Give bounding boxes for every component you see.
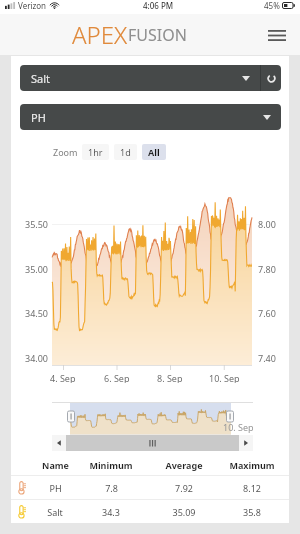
staticText: 7.80 [258, 263, 276, 275]
button[interactable]: Menu [260, 18, 294, 52]
staticText: APEX [72, 18, 128, 51]
staticText: 45% [264, 0, 280, 11]
staticText: Minimum [89, 459, 133, 471]
staticText: Zoom [53, 146, 78, 158]
staticText: 8. Sep [157, 372, 183, 383]
button[interactable]: PH [11, 476, 289, 499]
staticText: 1hr [88, 146, 103, 158]
button[interactable]: 1d [114, 144, 137, 160]
button[interactable]: Refresh [261, 65, 281, 91]
staticText: Salt [31, 71, 51, 86]
staticText: 34.50 [25, 307, 49, 319]
button[interactable]: PH [20, 104, 281, 130]
staticText: PH [49, 482, 62, 494]
staticText: 6. Sep [104, 372, 130, 383]
button[interactable]: Salt [11, 500, 289, 523]
staticText: 1d [120, 146, 131, 158]
staticText: 8.00 [258, 218, 276, 230]
staticText: 7.60 [258, 307, 276, 319]
staticText: Average [165, 459, 203, 471]
button[interactable]: Salt [20, 65, 260, 91]
staticText: 8.12 [243, 482, 261, 494]
staticText: 34.3 [102, 506, 120, 518]
staticText: Salt [47, 506, 63, 518]
staticText: 35.8 [243, 506, 261, 518]
staticText: 4:06 PM [143, 0, 174, 11]
staticText: 35.00 [25, 263, 49, 275]
staticText: 7.92 [175, 482, 193, 494]
button[interactable]: 1hr [82, 144, 109, 160]
staticText: FUSION [128, 24, 187, 46]
staticText: 35.09 [172, 506, 196, 518]
staticText: 34.00 [25, 352, 49, 364]
staticText: 7.8 [105, 482, 118, 494]
staticText: 10. Sep [209, 372, 240, 383]
staticText: 7.40 [258, 352, 276, 364]
button[interactable]: All [142, 144, 166, 160]
staticText: 4. Sep [50, 372, 76, 383]
staticText: 10. Sep [223, 421, 254, 433]
staticText: 35.50 [25, 218, 49, 230]
staticText: All [148, 146, 160, 158]
staticText: Verizon [18, 0, 47, 11]
staticText: Name [42, 459, 69, 471]
staticText: PH [31, 110, 46, 125]
staticText: Maximum [229, 459, 275, 471]
